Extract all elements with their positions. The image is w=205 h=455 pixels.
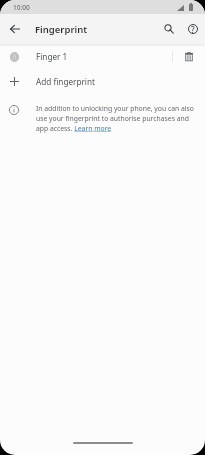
staticText: ? — [191, 24, 195, 35]
button[interactable]: Finger 1 — [0, 44, 205, 69]
staticText: Add fingerprint — [36, 76, 95, 87]
staticText: 10:00 — [13, 3, 30, 12]
button[interactable]: Back — [3, 17, 27, 41]
button[interactable]: Add fingerprint — [0, 69, 205, 94]
staticText: Finger 1 — [36, 51, 68, 62]
staticText: In addition to unlocking your phone, you… — [36, 104, 195, 133]
button[interactable]: Help — [181, 17, 205, 41]
staticText: Fingerprint — [35, 23, 88, 36]
button[interactable]: Search — [157, 17, 181, 41]
button[interactable]: Delete — [173, 44, 205, 69]
